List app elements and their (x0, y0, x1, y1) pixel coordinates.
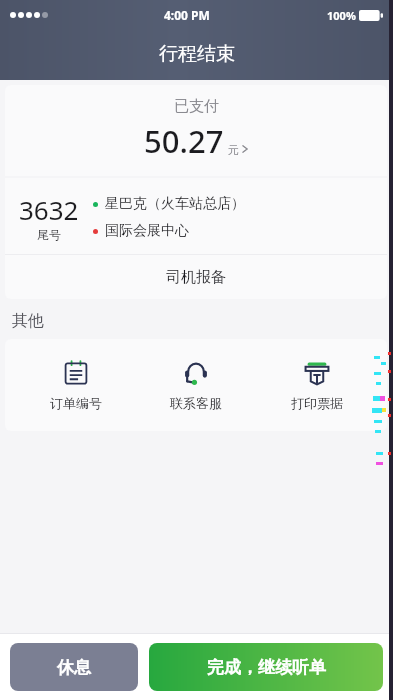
button[interactable]: 休息 (10, 643, 138, 691)
staticText: 50.27 (144, 120, 224, 162)
staticText: 其他 (12, 311, 44, 331)
staticText: 已支付 (174, 97, 219, 116)
staticText: 100% (327, 8, 356, 23)
staticText: 星巴克（火车站总店） (105, 195, 245, 213)
staticText: 司机报备 (166, 268, 226, 287)
button[interactable]: 订单编号 (26, 355, 126, 415)
staticText: 国际会展中心 (105, 222, 189, 240)
staticText: 完成，继续听单 (207, 657, 326, 678)
staticText: 行程结束 (159, 42, 235, 66)
staticText: 元 (228, 143, 239, 157)
staticText: 休息 (57, 657, 91, 678)
other: 联系客服 (183, 360, 209, 386)
staticText: 订单编号 (50, 395, 102, 411)
button[interactable]: 联系客服 (146, 355, 246, 415)
button[interactable]: 司机报备 (5, 255, 387, 299)
staticText: 联系客服 (170, 395, 222, 411)
staticText: 3632 (19, 192, 79, 227)
staticText: 4:00 PM (164, 7, 210, 23)
other: 打印票据 (304, 360, 330, 386)
button[interactable]: 已支付 (5, 85, 387, 176)
staticText: 尾号 (37, 227, 61, 242)
button[interactable]: 打印票据 (267, 355, 367, 415)
button[interactable]: 完成，继续听单 (149, 643, 383, 691)
other: 订单编号 (63, 360, 89, 386)
staticText: 打印票据 (291, 395, 343, 411)
